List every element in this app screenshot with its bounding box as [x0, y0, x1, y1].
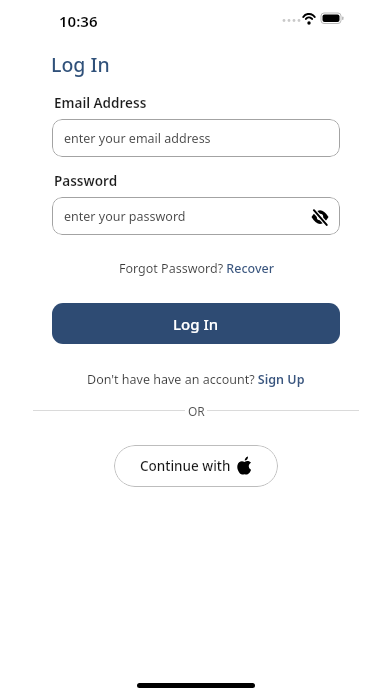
button[interactable]: enter your password	[52, 197, 340, 235]
button[interactable]: Don't have have an account? Sign Up	[87, 371, 305, 388]
staticText: Continue with	[140, 457, 231, 475]
staticText: enter your password	[64, 208, 186, 225]
staticText: Password	[54, 172, 118, 190]
staticText: 10:36	[59, 11, 98, 31]
button[interactable]: Forgot Password? Recover	[119, 260, 274, 277]
staticText: Log In	[51, 51, 110, 78]
button[interactable]	[311, 208, 329, 226]
button[interactable]: enter your email address	[52, 119, 340, 157]
staticText: Log In	[173, 314, 219, 334]
staticText: Email Address	[54, 94, 147, 112]
staticText: enter your email address	[64, 130, 211, 147]
button[interactable]: Log In	[52, 303, 340, 344]
staticText: OR	[188, 403, 205, 419]
button[interactable]: Continue with	[114, 445, 278, 487]
